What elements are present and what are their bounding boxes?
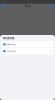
button[interactable]: Back [0,4,7,8]
staticText: On My iPhone [7,50,16,52]
button[interactable]: On My iPhone [2,48,53,54]
button[interactable]: iCloud Drive [2,41,53,48]
staticText: 9:41 [1,1,4,3]
staticText: iCloud Drive [7,43,15,45]
button[interactable]: Add [48,4,55,8]
staticText: Files [24,4,30,8]
staticText: Recents [3,36,14,40]
